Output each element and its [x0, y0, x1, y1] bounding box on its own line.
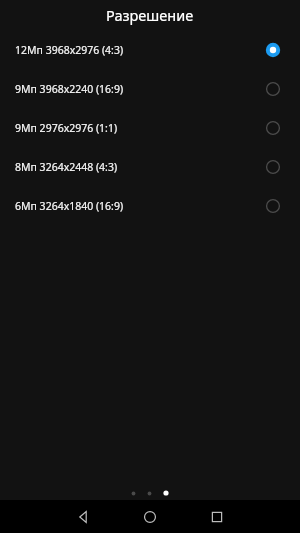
- button[interactable]: 9Мп 3968x2240 (16:9): [0, 69, 300, 108]
- staticText: 12Мп 3968x2976 (4:3): [15, 43, 264, 57]
- staticText: 9Мп 3968x2240 (16:9): [15, 82, 264, 96]
- button[interactable]: Recent apps: [202, 502, 232, 532]
- button[interactable]: 9Мп 2976x2976 (1:1): [0, 108, 300, 147]
- staticText: 6Мп 3264x1840 (16:9): [15, 199, 264, 213]
- button[interactable]: 8Мп 3264x2448 (4:3): [0, 147, 300, 186]
- button[interactable]: Home: [135, 502, 165, 532]
- staticText: 9Мп 2976x2976 (1:1): [15, 121, 264, 135]
- staticText: 8Мп 3264x2448 (4:3): [15, 160, 264, 174]
- staticText: Разрешение: [106, 5, 194, 25]
- button[interactable]: 6Мп 3264x1840 (16:9): [0, 186, 300, 225]
- button[interactable]: 12Мп 3968x2976 (4:3): [0, 30, 300, 69]
- button[interactable]: Back: [68, 502, 98, 532]
